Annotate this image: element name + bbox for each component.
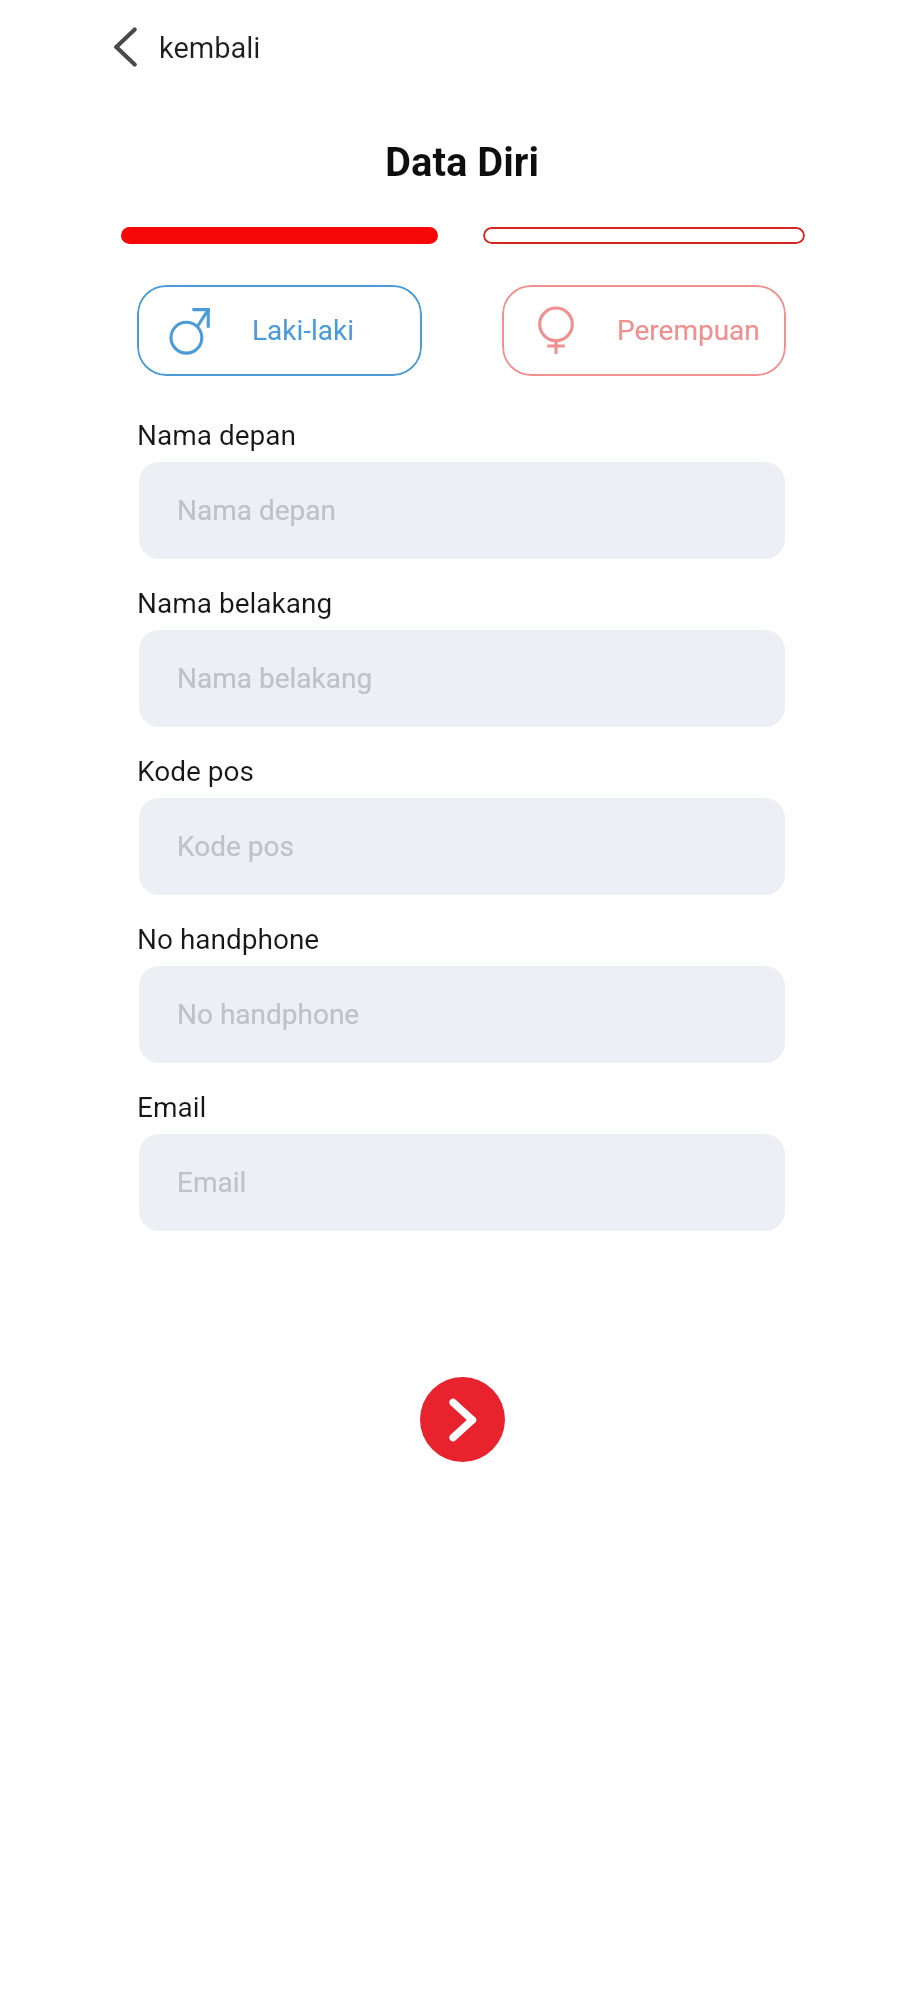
button[interactable]: Lanjut [420, 1377, 505, 1462]
button[interactable]: No handphone [139, 966, 785, 1063]
button[interactable]: Kode pos [139, 798, 785, 895]
button[interactable]: Nama depan [139, 462, 785, 559]
staticText: No handphone [137, 923, 320, 956]
staticText: No handphone [177, 998, 360, 1031]
button[interactable]: Nama belakang [139, 630, 785, 727]
staticText: Perempuan [617, 314, 760, 347]
staticText: kembali [159, 31, 261, 65]
button[interactable]: kembali [106, 21, 269, 71]
button[interactable]: Perempuan [502, 285, 786, 376]
button[interactable]: Laki-laki [137, 285, 422, 376]
staticText: Email [177, 1166, 247, 1199]
staticText: Kode pos [177, 830, 294, 863]
button[interactable]: Email [139, 1134, 785, 1231]
staticText: Nama belakang [137, 587, 333, 620]
staticText: Data Diri [385, 139, 540, 186]
staticText: Laki-laki [252, 314, 355, 347]
staticText: Email [137, 1091, 207, 1124]
staticText: Nama depan [137, 419, 296, 452]
staticText: Nama belakang [177, 662, 373, 695]
staticText: Nama depan [177, 494, 336, 527]
staticText: Kode pos [137, 755, 254, 788]
